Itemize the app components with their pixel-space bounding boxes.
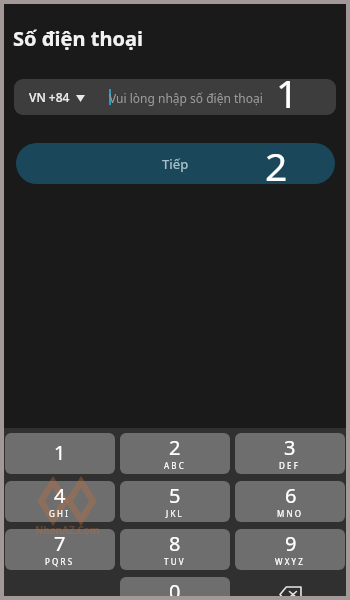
staticText: NhanAZ.Com (35, 523, 100, 537)
button[interactable]: 1 (5, 433, 115, 474)
staticText: DEF (279, 460, 301, 471)
staticText: ABC (164, 460, 186, 471)
staticText: GHI (49, 508, 71, 519)
button[interactable]: 8 (120, 529, 230, 570)
button[interactable]: Xóa (235, 577, 345, 596)
button[interactable]: 6 (235, 481, 345, 522)
staticText: 6 (285, 482, 297, 509)
button[interactable]: 2 (120, 433, 230, 474)
staticText: 5 (169, 482, 181, 509)
button[interactable]: Tiếp (16, 143, 335, 184)
staticText: WXYZ (275, 556, 306, 567)
staticText: 4 (54, 482, 66, 509)
staticText: 9 (285, 530, 297, 557)
staticText: Số điện thoại (13, 25, 143, 52)
staticText: 7 (54, 530, 66, 557)
button[interactable]: 5 (120, 481, 230, 522)
staticText: 3 (284, 434, 296, 461)
other: Chọn mã quốc gia (76, 95, 85, 102)
staticText: 2 (169, 434, 181, 461)
staticText: JKL (166, 508, 184, 519)
button[interactable]: 4 (5, 481, 115, 522)
button[interactable]: 3 (235, 433, 345, 474)
staticText: 1 (276, 66, 299, 119)
staticText: 0 (169, 578, 181, 596)
staticText: VN +84 (29, 89, 70, 105)
staticText: TUV (164, 556, 186, 567)
staticText: 1 (54, 439, 66, 466)
button[interactable]: 7 (5, 529, 115, 570)
button[interactable]: 9 (235, 529, 345, 570)
staticText: 2 (265, 139, 288, 192)
staticText: PQRS (45, 556, 75, 567)
staticText: 8 (169, 530, 181, 557)
staticText: MNO (277, 508, 304, 519)
staticText: Tiếp (162, 155, 189, 173)
button[interactable]: VN +84 (14, 79, 336, 115)
button[interactable]: 0 (120, 577, 230, 596)
staticText: Vui lòng nhập số điện thoại (109, 90, 263, 106)
